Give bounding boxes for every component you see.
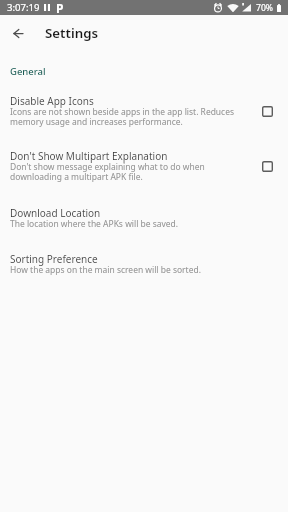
button[interactable]: Download Location	[0, 203, 288, 245]
staticText: Don't show message explaining what to do…	[10, 161, 244, 182]
staticText: Icons are not shown beside apps in the a…	[10, 106, 244, 127]
staticText: The location where the APKs will be save…	[10, 218, 179, 230]
staticText: Don't Show Multipart Explanation	[10, 149, 168, 163]
staticText: 3:07:19	[7, 1, 40, 14]
button[interactable]: Disable App Icons	[0, 91, 288, 143]
staticText: General	[10, 65, 46, 78]
staticText: Sorting Preference	[10, 252, 98, 266]
staticText: 70%	[256, 2, 273, 14]
staticText: Download Location	[10, 206, 101, 220]
staticText: P	[56, 0, 64, 15]
staticText: Disable App Icons	[10, 94, 94, 108]
button[interactable]: Sorting Preference	[0, 249, 288, 291]
staticText: How the apps on the main screen will be …	[10, 264, 201, 276]
staticText: Settings	[45, 24, 99, 42]
button[interactable]: Back	[0, 15, 36, 51]
button[interactable]: Don't Show Multipart Explanation	[0, 146, 288, 198]
